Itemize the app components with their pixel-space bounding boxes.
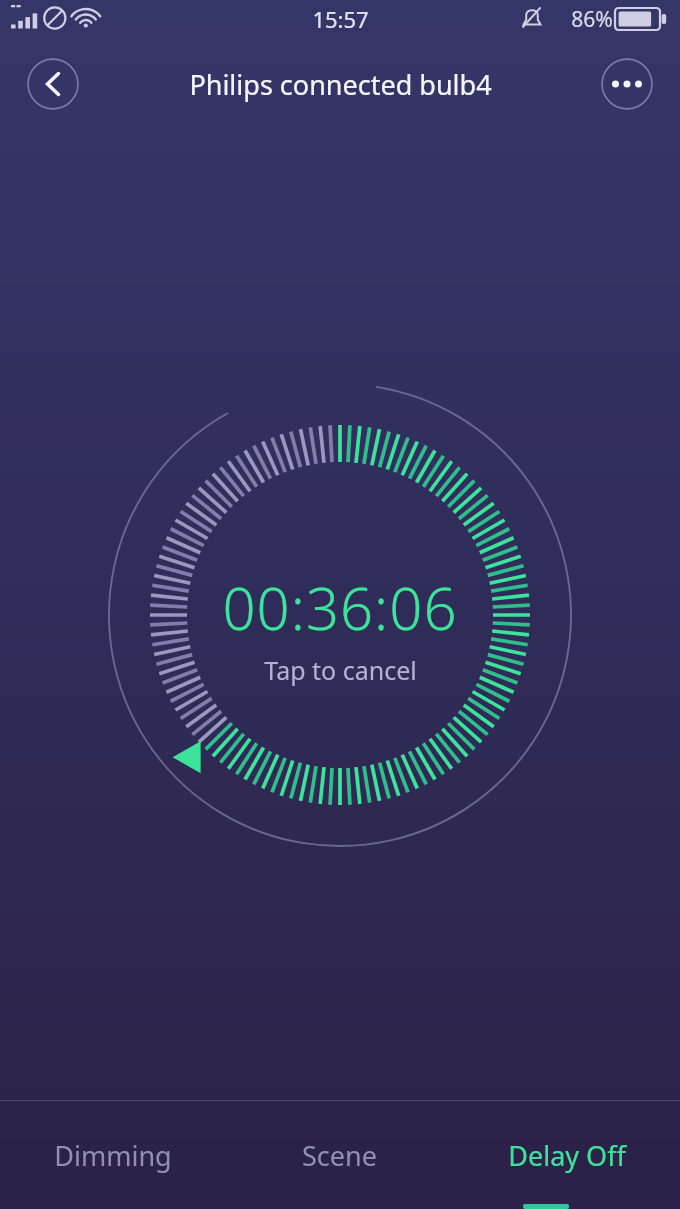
staticText: 15:57 xyxy=(312,4,369,34)
staticText: Scene xyxy=(302,1137,377,1174)
button[interactable]: Dimming xyxy=(0,1101,226,1209)
staticText: Delay Off xyxy=(508,1137,626,1174)
staticText: 00:36:06 xyxy=(222,568,458,647)
button[interactable]: Scene xyxy=(226,1101,453,1209)
button[interactable]: Back xyxy=(27,58,79,110)
button[interactable]: 00:36:06 xyxy=(0,130,680,1110)
staticText: Tap to cancel xyxy=(264,653,417,687)
staticText: 86% xyxy=(571,5,613,34)
button[interactable]: Delay Off xyxy=(453,1101,680,1209)
button[interactable]: More options xyxy=(601,58,653,110)
staticText: Dimming xyxy=(54,1137,172,1174)
staticText: Philips connected bulb4 xyxy=(189,66,492,103)
